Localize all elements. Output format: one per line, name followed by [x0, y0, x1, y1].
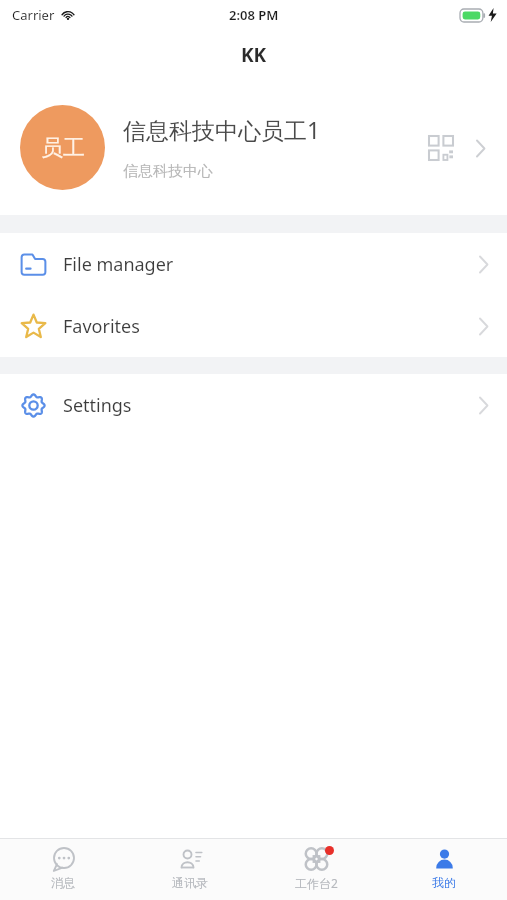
staticText: 员工 [41, 134, 85, 162]
button[interactable]: 员工 [0, 80, 507, 215]
staticText: Settings [63, 393, 478, 418]
staticText: 信息科技中心员工1 [123, 114, 321, 145]
button[interactable]: Settings [0, 374, 507, 436]
button[interactable]: QR code [421, 128, 461, 168]
staticText: 工作台2 [295, 875, 338, 891]
staticText: Carrier [12, 6, 55, 24]
staticText: File manager [63, 252, 478, 277]
staticText: KK [241, 42, 267, 68]
button[interactable]: 通讯录 [126, 839, 253, 900]
staticText: 消息 [51, 875, 75, 890]
button[interactable]: 消息 [0, 839, 126, 900]
staticText: 2:08 PM [229, 6, 279, 24]
staticText: Favorites [63, 314, 478, 339]
staticText: 信息科技中心 [123, 162, 213, 181]
staticText: 通讯录 [172, 875, 208, 890]
button[interactable]: Favorites [0, 295, 507, 357]
button[interactable]: 工作台2 [253, 839, 380, 900]
button[interactable]: File manager [0, 233, 507, 295]
button[interactable]: 我的 [380, 839, 507, 900]
staticText: 我的 [432, 875, 456, 890]
